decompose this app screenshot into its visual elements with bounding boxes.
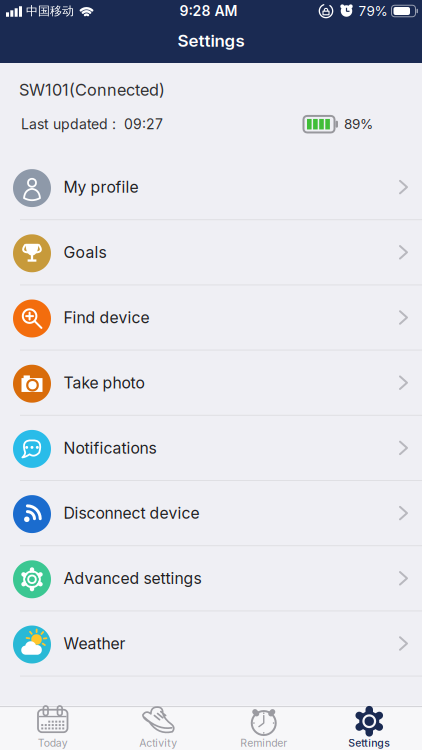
button[interactable]: Weather — [0, 611, 422, 677]
staticText: 9:28 AM — [179, 2, 237, 19]
button[interactable]: Settings — [316, 707, 422, 749]
button[interactable]: Reminder — [211, 707, 316, 749]
button[interactable]: Advanced settings — [0, 546, 422, 611]
button[interactable]: Today — [0, 707, 105, 749]
staticText: Disconnect device — [63, 503, 199, 523]
button[interactable]: Activity — [105, 707, 211, 749]
button[interactable]: Notifications — [0, 416, 422, 481]
staticText: 中国移动 — [26, 4, 74, 18]
staticText: Goals — [63, 243, 106, 262]
button[interactable]: Find device — [0, 285, 422, 351]
staticText: My profile — [63, 177, 138, 197]
staticText: Reminder — [240, 736, 287, 749]
staticText: Weather — [63, 634, 125, 653]
button[interactable]: My profile — [0, 155, 422, 220]
staticText: 89% — [344, 116, 373, 132]
staticText: Find device — [63, 308, 149, 327]
staticText: Settings — [348, 736, 390, 749]
button[interactable]: Goals — [0, 220, 422, 285]
staticText: Activity — [139, 736, 177, 749]
staticText: SW101(Connected) — [19, 80, 165, 100]
staticText: Advanced settings — [63, 569, 201, 588]
staticText: Settings — [177, 30, 244, 51]
staticText: 79% — [358, 3, 387, 19]
staticText: Last updated : 09:27 — [21, 116, 163, 133]
staticText: Take photo — [63, 373, 144, 392]
button[interactable]: Take photo — [0, 351, 422, 416]
staticText: Notifications — [63, 438, 156, 457]
staticText: Today — [38, 736, 68, 749]
button[interactable]: Disconnect device — [0, 481, 422, 546]
